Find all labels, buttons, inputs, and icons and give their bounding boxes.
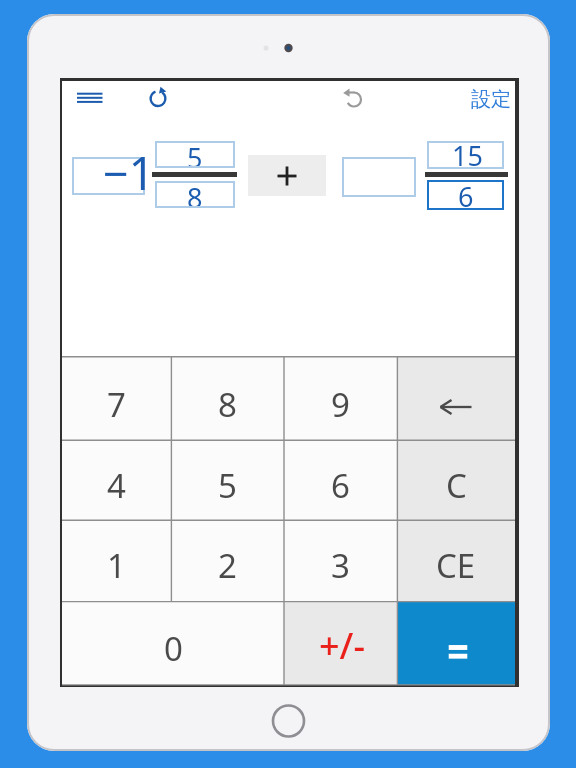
button[interactable]: 設定 [468, 86, 514, 113]
button[interactable] [340, 85, 368, 113]
staticText: 5 [187, 139, 203, 166]
button[interactable]: 5 [171, 440, 284, 520]
button[interactable]: 6 [284, 440, 397, 520]
staticText: 15 [452, 137, 483, 174]
button[interactable]: 8 [155, 181, 235, 208]
button[interactable]: 0 [62, 602, 284, 685]
button[interactable]: 1 [62, 520, 171, 601]
staticText: 1 [107, 543, 126, 588]
button[interactable] [143, 84, 173, 114]
staticText: 6 [331, 463, 350, 508]
button[interactable] [72, 87, 108, 113]
staticText: 8 [187, 179, 203, 206]
staticText: 2 [218, 543, 237, 588]
button[interactable]: 3 [284, 520, 397, 601]
button[interactable]: 6 [427, 180, 504, 210]
button[interactable]: 5 [155, 141, 235, 168]
button[interactable] [397, 602, 515, 685]
button[interactable]: 7 [62, 357, 171, 441]
button[interactable] [427, 141, 504, 169]
button[interactable]: 9 [284, 357, 397, 441]
button[interactable]: CE [397, 520, 515, 601]
staticText: 8 [218, 382, 237, 427]
staticText: 4 [107, 463, 126, 508]
staticText: 6 [458, 178, 474, 208]
staticText: CE [436, 543, 476, 588]
button[interactable]: C [397, 440, 515, 520]
staticText: −1 [103, 142, 155, 203]
button[interactable] [342, 157, 416, 197]
button[interactable] [248, 155, 326, 196]
button[interactable]: 8 [171, 357, 284, 441]
staticText: 設定 [471, 87, 511, 112]
button[interactable] [397, 357, 515, 441]
button[interactable] [72, 157, 145, 195]
staticText: 5 [218, 463, 237, 508]
button[interactable]: 2 [171, 520, 284, 601]
staticText: 7 [107, 382, 126, 427]
staticText: 3 [331, 543, 350, 588]
staticText: 0 [164, 626, 183, 671]
staticText: +/- [319, 621, 366, 670]
staticText: 9 [331, 382, 350, 427]
button[interactable]: +/- [284, 602, 397, 685]
staticText: C [446, 463, 467, 508]
button[interactable]: 4 [62, 440, 171, 520]
